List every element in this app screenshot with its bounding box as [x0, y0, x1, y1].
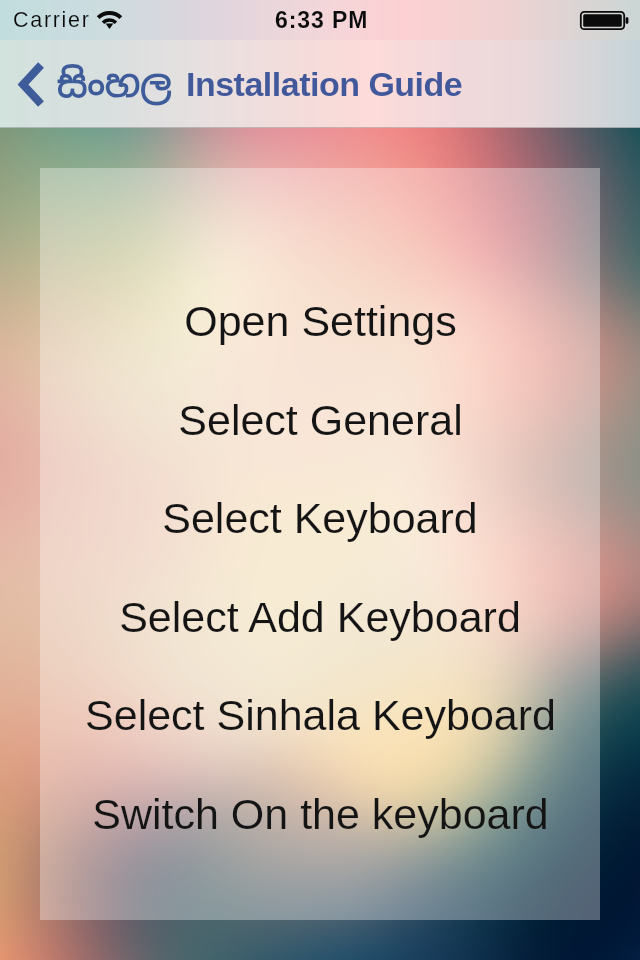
staticText: Select Keyboard	[162, 494, 478, 542]
staticText: සිංහල	[57, 60, 172, 108]
staticText: Select General	[178, 396, 463, 444]
other: Back	[19, 61, 45, 108]
button[interactable]: Back	[15, 54, 176, 114]
staticText: Select Add Keyboard	[119, 593, 521, 641]
staticText: 6:33 PM	[275, 7, 369, 33]
staticText: Installation Guide	[186, 65, 463, 103]
staticText: Select Sinhala Keyboard	[85, 691, 556, 739]
staticText: Open Settings	[184, 297, 457, 345]
staticText: Carrier	[13, 8, 91, 32]
staticText: Switch On the keyboard	[92, 790, 549, 838]
